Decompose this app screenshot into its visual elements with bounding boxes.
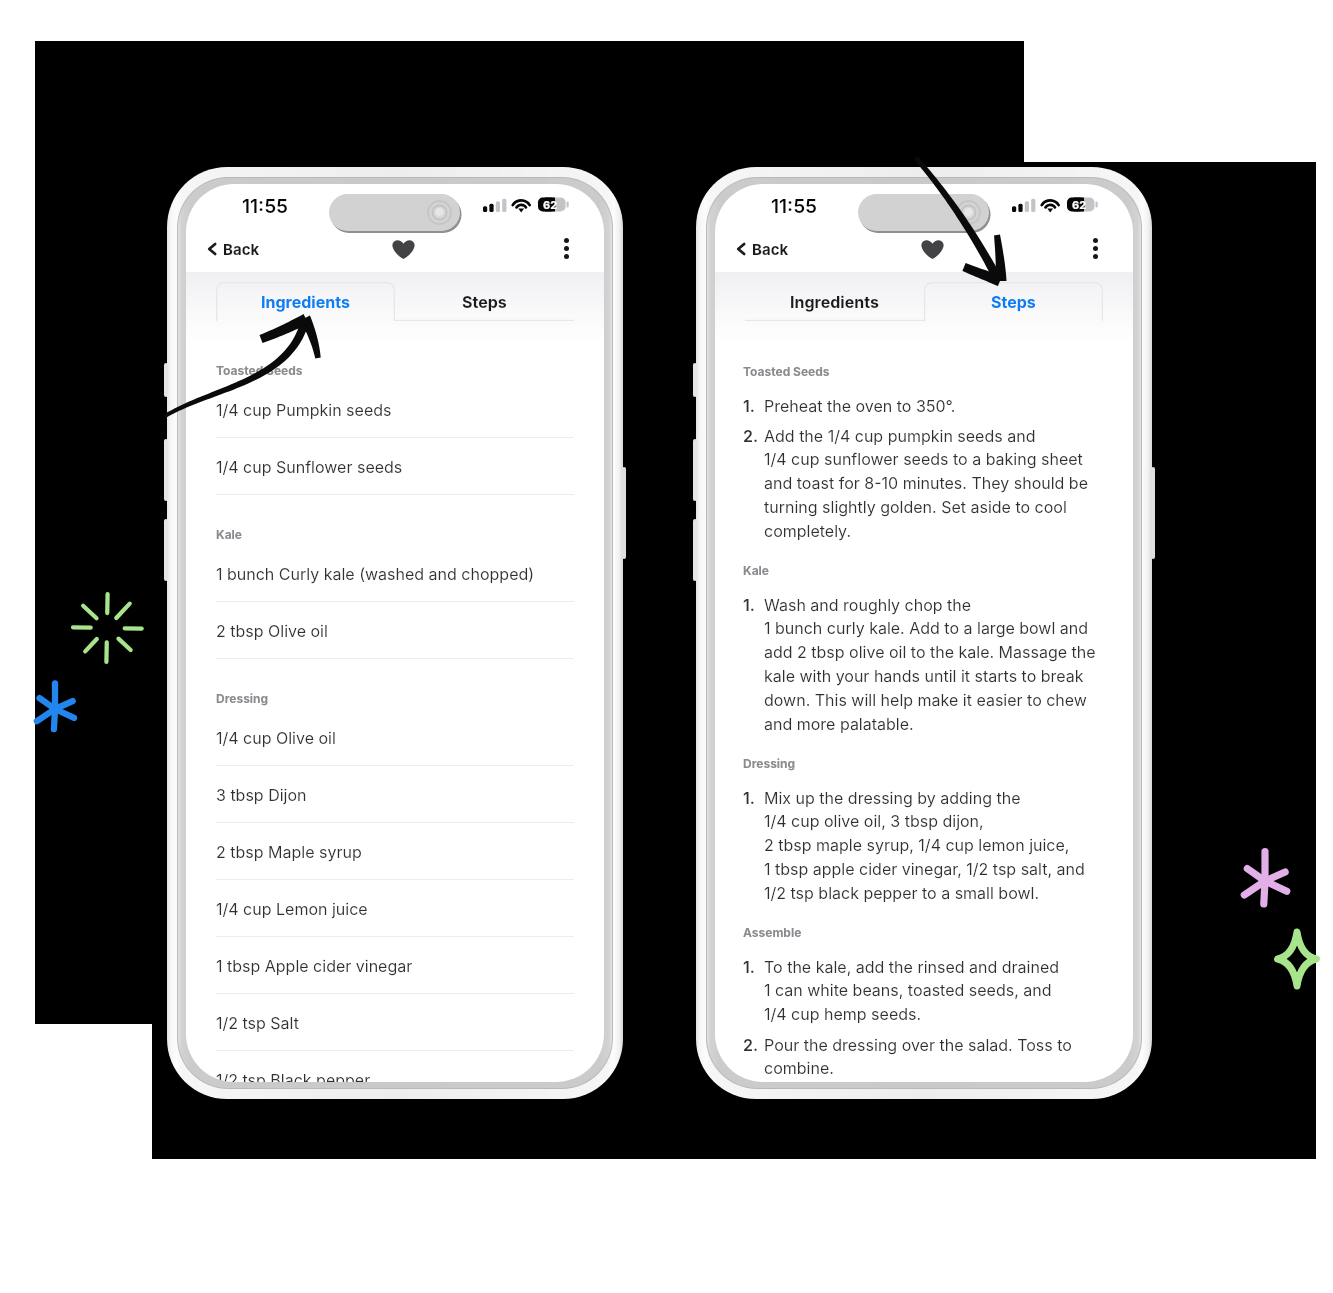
staticText: 1.	[743, 957, 764, 976]
button[interactable]: Ingredients	[216, 282, 395, 321]
staticText: 1.	[743, 595, 764, 614]
staticText: Back	[223, 240, 260, 258]
button[interactable]: 1/2 tsp Black pepper	[216, 1051, 574, 1082]
button[interactable]: Steps	[395, 282, 574, 321]
staticText: 1/4 cup Pumpkin seeds	[216, 400, 392, 419]
button[interactable]: 1 tbsp Apple cider vinegar	[216, 937, 574, 994]
staticText: 2 tbsp Olive oil	[216, 621, 328, 640]
staticText: 1.	[743, 788, 764, 807]
button[interactable]: 1/4 cup Pumpkin seeds	[216, 381, 574, 438]
staticText: Back	[752, 240, 789, 258]
staticText: 1/2 tsp Black pepper	[216, 1070, 371, 1082]
staticText: 1.	[743, 396, 764, 415]
staticText: 11:55	[771, 195, 818, 218]
staticText: Kale	[743, 563, 769, 578]
button[interactable]: 1/4 cup Lemon juice	[216, 880, 574, 937]
staticText: 11:55	[242, 195, 289, 218]
staticText: Dressing	[216, 691, 269, 706]
button[interactable]: More options	[555, 229, 578, 268]
button[interactable]: 1 bunch Curly kale (washed and chopped)	[216, 545, 574, 602]
staticText: To the kale, add the rinsed and drained …	[764, 957, 1060, 1024]
button[interactable]: 1/2 tsp Salt	[216, 994, 574, 1051]
staticText: Ingredients	[790, 292, 879, 311]
button[interactable]: More options	[1084, 229, 1107, 268]
button[interactable]: Favorite	[383, 231, 424, 268]
staticText: Add the 1/4 cup pumpkin seeds and 1/4 cu…	[764, 426, 1088, 541]
staticText: 1 bunch Curly kale (washed and chopped)	[216, 564, 535, 583]
staticText: 1 tbsp Apple cider vinegar	[216, 956, 413, 975]
staticText: Kale	[216, 527, 242, 542]
staticText: 2 tbsp Maple syrup	[216, 842, 362, 861]
staticText: Steps	[462, 292, 507, 311]
button[interactable]: Steps	[924, 282, 1103, 321]
staticText: 1/4 cup Olive oil	[216, 728, 336, 747]
staticText: 1/4 cup Lemon juice	[216, 899, 368, 918]
staticText: Mix up the dressing by adding the 1/4 cu…	[764, 788, 1085, 903]
staticText: Toasted Seeds	[743, 364, 830, 379]
staticText: 3 tbsp Dijon	[216, 785, 307, 804]
staticText: Toasted Seeds	[216, 363, 303, 378]
staticText: 1/4 cup Sunflower seeds	[216, 457, 403, 476]
button[interactable]: Back	[729, 234, 797, 264]
button[interactable]: 2 tbsp Maple syrup	[216, 823, 574, 880]
staticText: Pour the dressing over the salad. Toss t…	[764, 1035, 1072, 1078]
staticText: Dressing	[743, 756, 796, 771]
staticText: Ingredients	[261, 292, 350, 311]
button[interactable]: 1/4 cup Sunflower seeds	[216, 438, 574, 495]
staticText: 62	[1072, 198, 1087, 211]
staticText: 2.	[743, 426, 764, 445]
button[interactable]: 3 tbsp Dijon	[216, 766, 574, 823]
staticText: Steps	[991, 292, 1036, 311]
button[interactable]: 2 tbsp Olive oil	[216, 602, 574, 659]
button[interactable]: Favorite	[912, 231, 953, 268]
staticText: 1/2 tsp Salt	[216, 1013, 299, 1032]
staticText: Preheat the oven to 350°.	[764, 396, 956, 415]
button[interactable]: Ingredients	[745, 282, 924, 321]
staticText: Wash and roughly chop the 1 bunch curly …	[764, 595, 1096, 734]
staticText: 2.	[743, 1035, 764, 1054]
button[interactable]: 1/4 cup Olive oil	[216, 709, 574, 766]
staticText: 62	[543, 198, 558, 211]
button[interactable]: Back	[200, 234, 268, 264]
staticText: Assemble	[743, 925, 802, 940]
